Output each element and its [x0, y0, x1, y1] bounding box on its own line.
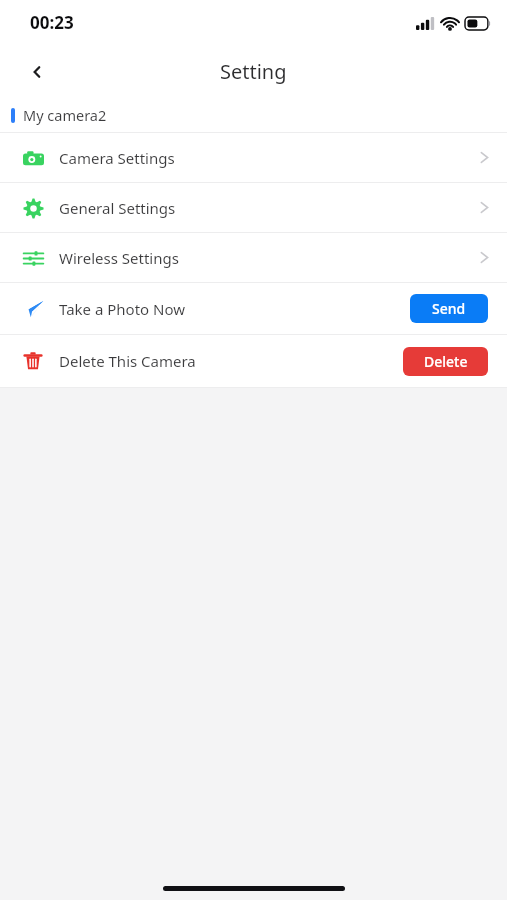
button[interactable]: Delete	[403, 347, 488, 376]
staticText: Delete	[424, 352, 468, 371]
staticText: Take a Photo Now	[59, 299, 186, 319]
button[interactable]: Camera Settings	[0, 133, 507, 182]
staticText: Wireless Settings	[59, 248, 179, 268]
button[interactable]: General Settings	[0, 183, 507, 232]
staticText: General Settings	[59, 198, 176, 218]
staticText: Camera Settings	[59, 148, 175, 168]
staticText: Send	[432, 299, 466, 318]
staticText: My camera2	[23, 105, 107, 125]
staticText: 00:23	[30, 11, 74, 34]
button[interactable]: Wireless Settings	[0, 233, 507, 282]
button[interactable]: Back	[19, 54, 55, 90]
staticText: Setting	[220, 58, 287, 85]
staticText: Delete This Camera	[59, 351, 196, 371]
button[interactable]: Send	[410, 294, 488, 323]
